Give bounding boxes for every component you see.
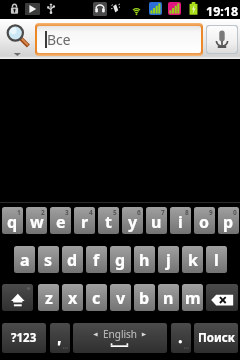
button[interactable]: z	[38, 284, 59, 311]
staticText: i	[178, 211, 183, 233]
staticText: g	[115, 249, 126, 271]
button[interactable]: v	[110, 284, 131, 311]
button[interactable]: o	[194, 207, 215, 234]
button[interactable]: Period	[171, 323, 191, 353]
button[interactable]: a	[14, 246, 35, 273]
staticText: ?123	[11, 330, 37, 346]
staticText: c	[92, 287, 101, 309]
staticText: h	[139, 249, 150, 271]
staticText: z	[45, 287, 53, 309]
button[interactable]: k	[182, 246, 203, 273]
button[interactable]: Voice search	[207, 26, 237, 53]
button[interactable]: Comma	[50, 323, 70, 353]
staticText: r	[81, 211, 89, 233]
button[interactable]: j	[158, 246, 179, 273]
button[interactable]: c	[86, 284, 107, 311]
staticText: 0	[233, 208, 237, 217]
button[interactable]: u	[146, 207, 167, 234]
button[interactable]: ?123	[2, 323, 46, 353]
staticText: 19:18	[206, 3, 239, 20]
staticText: s	[44, 249, 53, 271]
button[interactable]: Space, English	[73, 323, 167, 353]
staticText: Все	[47, 30, 71, 49]
staticText: 6	[137, 208, 141, 217]
button[interactable]: t	[98, 207, 119, 234]
staticText: l	[214, 249, 219, 271]
staticText: 3	[65, 208, 69, 217]
button[interactable]: l	[206, 246, 227, 273]
staticText: 4	[89, 208, 93, 217]
button[interactable]: m	[182, 284, 203, 311]
button[interactable]: b	[134, 284, 155, 311]
button[interactable]: Все	[37, 26, 201, 53]
button[interactable]: n	[158, 284, 179, 311]
button[interactable]: w	[26, 207, 47, 234]
staticText: v	[116, 287, 126, 309]
button[interactable]: d	[62, 246, 83, 273]
button[interactable]: Поиск	[194, 323, 238, 353]
staticText: 5	[113, 208, 117, 217]
button[interactable]: h	[134, 246, 155, 273]
staticText: p	[223, 211, 234, 233]
staticText: 7	[161, 208, 165, 217]
button[interactable]: y	[122, 207, 143, 234]
staticText: u	[151, 211, 162, 233]
staticText: q	[7, 211, 18, 233]
button[interactable]: r	[74, 207, 95, 234]
button[interactable]: Shift	[2, 284, 33, 311]
staticText: o	[199, 211, 210, 233]
button[interactable]: Search type	[2, 19, 34, 59]
staticText: 9	[209, 208, 213, 217]
staticText: w	[30, 211, 44, 233]
staticText: Поиск	[198, 330, 235, 346]
button[interactable]: e	[50, 207, 71, 234]
staticText: e	[56, 211, 66, 233]
button[interactable]: s	[38, 246, 59, 273]
staticText: k	[188, 249, 198, 271]
button[interactable]: q	[2, 207, 23, 234]
button[interactable]: p	[218, 207, 239, 234]
staticText: 1	[17, 208, 21, 217]
button[interactable]: f	[86, 246, 107, 273]
staticText: a	[20, 249, 30, 271]
button[interactable]: g	[110, 246, 131, 273]
staticText: English	[103, 327, 138, 341]
staticText: x	[68, 287, 78, 309]
button[interactable]: i	[170, 207, 191, 234]
staticText: y	[128, 211, 138, 233]
staticText: 2	[41, 208, 45, 217]
staticText: b	[139, 287, 150, 309]
button[interactable]: Backspace	[206, 284, 238, 311]
staticText: j	[166, 249, 171, 271]
button[interactable]: x	[62, 284, 83, 311]
staticText: m	[185, 287, 201, 309]
staticText: d	[67, 249, 78, 271]
staticText: 8	[185, 208, 189, 217]
staticText: n	[163, 287, 174, 309]
staticText: t	[105, 211, 112, 233]
staticText: f	[93, 249, 100, 271]
